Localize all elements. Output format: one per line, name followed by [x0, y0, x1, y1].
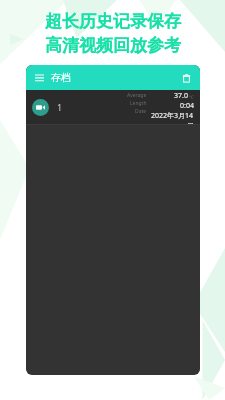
staticText: Date	[135, 108, 147, 115]
button[interactable]: Delete	[178, 70, 194, 86]
staticText: Length	[130, 100, 147, 107]
staticText: 存档	[51, 71, 71, 84]
staticText: ℃	[189, 94, 194, 100]
staticText: 2022年3月14	[151, 111, 194, 121]
staticText: 超长历史记录保存	[45, 11, 181, 32]
staticText: 37.0	[174, 91, 188, 101]
staticText: 1	[57, 101, 63, 113]
button[interactable]: 1	[26, 90, 200, 124]
button[interactable]: Menu	[31, 70, 47, 86]
staticText: 高清视频回放参考	[45, 35, 181, 56]
staticText: Average	[127, 92, 147, 99]
staticText: 0:04	[180, 101, 194, 111]
staticText: 日	[187, 121, 194, 124]
